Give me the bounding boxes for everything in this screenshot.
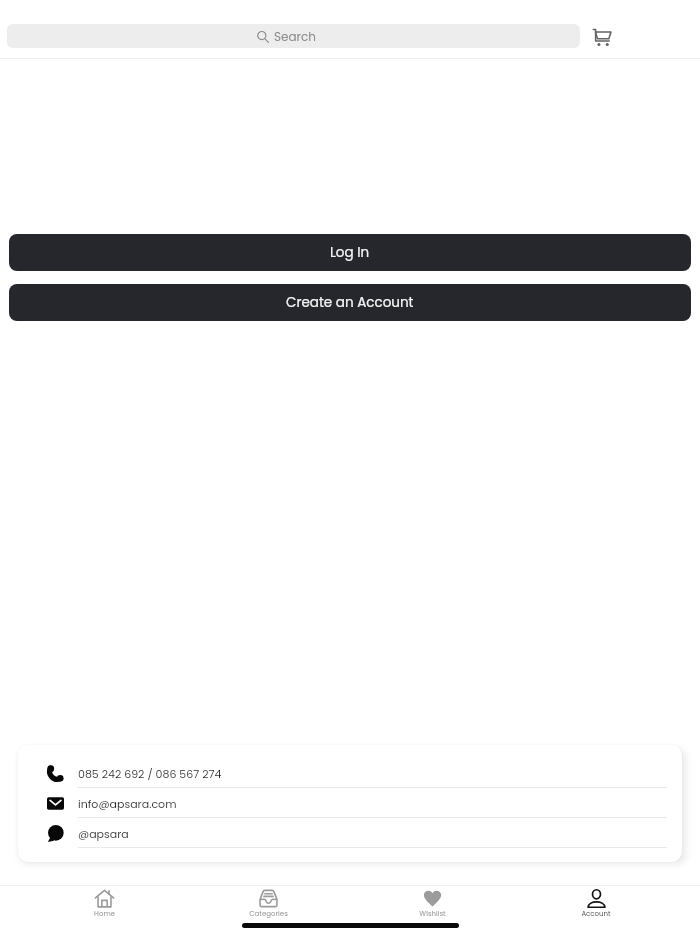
staticText: Categories [249,909,288,919]
staticText: @apsara [78,826,129,841]
button[interactable]: info@apsara.com [18,788,682,818]
staticText: Log In [330,243,370,262]
button[interactable]: Search [7,24,580,48]
button[interactable]: Wishlist [350,889,514,919]
button[interactable]: @apsara [18,818,682,848]
staticText: Account [581,909,611,919]
staticText: Home [94,909,115,919]
staticText: Search [274,28,317,45]
staticText: Create an Account [286,293,414,312]
button[interactable]: Categories [186,889,350,919]
button[interactable]: Shopping cart [585,20,619,54]
staticText: info@apsara.com [78,796,177,811]
button[interactable]: Create an Account [9,284,691,321]
staticText: 085 242 692 / 086 567 274 [78,766,222,781]
button[interactable]: Account [514,889,678,919]
button[interactable]: Home [22,889,186,919]
button[interactable]: 085 242 692 / 086 567 274 [18,758,682,788]
staticText: Wishlist [419,909,446,919]
button[interactable]: Log In [9,234,691,271]
